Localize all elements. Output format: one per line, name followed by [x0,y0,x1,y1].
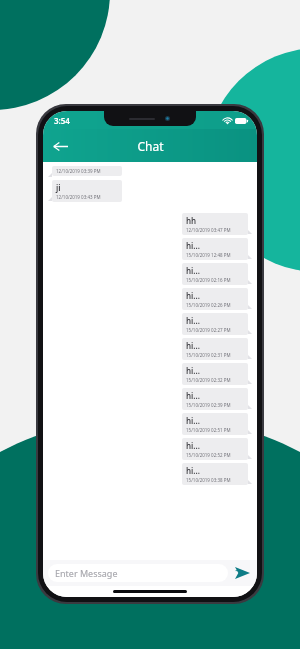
button[interactable]: hh [182,213,248,235]
button[interactable]: 12/10/2019 03:39 PM [52,166,122,176]
button[interactable]: Send [232,563,252,583]
button[interactable]: hi... [182,388,248,410]
staticText: hi... [186,240,200,251]
staticText: 15/10/2019 03:38 PM [186,477,231,483]
staticText: 3:54 [54,115,70,126]
staticText: 15/10/2019 02:26 PM [186,302,231,308]
staticText: 15/10/2019 02:32 PM [186,377,231,383]
staticText: Enter Message [55,567,118,579]
button[interactable]: Enter Message [48,564,228,582]
staticText: hh [186,215,197,226]
staticText: 15/10/2019 02:27 PM [186,327,231,333]
staticText: 12/10/2019 03:39 PM [56,168,101,174]
button[interactable]: hi... [182,288,248,310]
button[interactable]: hi... [182,313,248,335]
staticText: hi... [186,290,200,301]
button[interactable]: hi... [182,438,248,460]
button[interactable]: hi... [182,363,248,385]
staticText: hi... [186,340,200,351]
button[interactable]: hi... [182,238,248,260]
staticText: 12/10/2019 03:47 PM [186,227,231,233]
button[interactable]: hi... [182,263,248,285]
staticText: ji [56,182,61,193]
staticText: hi... [186,365,200,376]
button[interactable]: ji [52,180,122,202]
staticText: hi... [186,415,200,426]
staticText: hi... [186,265,200,276]
staticText: 15/10/2019 02:52 PM [186,452,231,458]
staticText: 12/10/2019 03:43 PM [56,194,101,200]
staticText: hi... [186,315,200,326]
button[interactable]: hi... [182,413,248,435]
staticText: hi... [186,440,200,451]
button[interactable]: hi... [182,338,248,360]
staticText: 15/10/2019 12:48 PM [186,252,231,258]
staticText: hi... [186,390,200,401]
staticText: 15/10/2019 02:31 PM [186,352,231,358]
button[interactable]: Back [47,133,73,159]
staticText: 15/10/2019 02:51 PM [186,427,231,433]
staticText: 15/10/2019 02:39 PM [186,402,231,408]
button[interactable]: hi... [182,463,248,485]
staticText: hi... [186,465,200,476]
staticText: 15/10/2019 02:16 PM [186,277,231,283]
staticText: Chat [137,138,164,154]
